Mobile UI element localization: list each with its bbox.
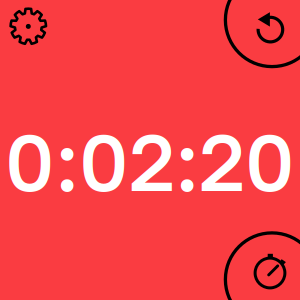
button[interactable]: Stopwatch (0, 0, 300, 300)
button[interactable]: Settings (0, 0, 300, 300)
staticText: 0:02:20 (5, 114, 295, 208)
button[interactable]: Reset (0, 0, 300, 300)
